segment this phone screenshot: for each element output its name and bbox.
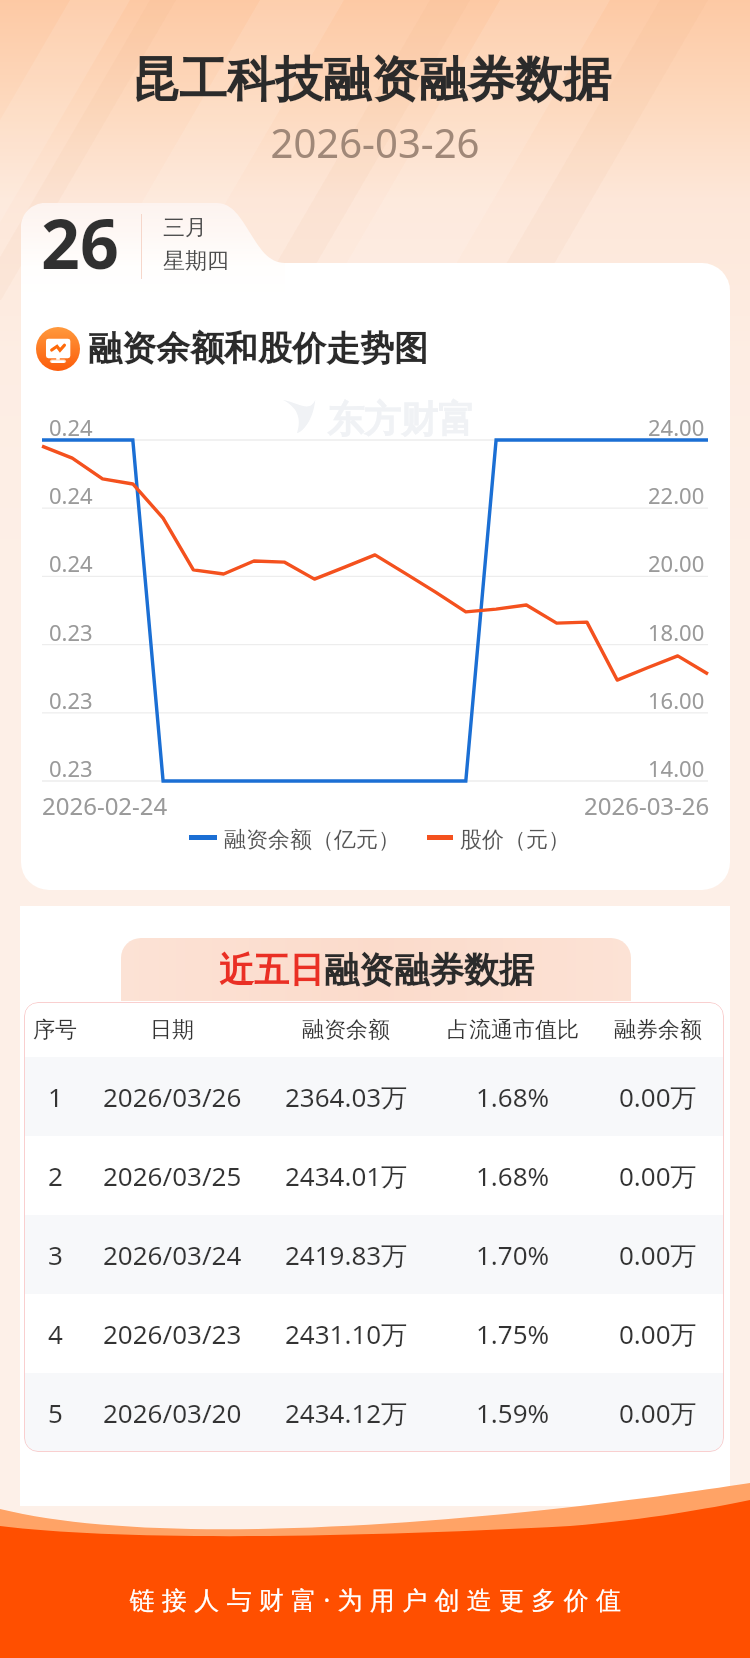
staticText: 2026/03/24 xyxy=(103,1237,242,1272)
staticText: 16.00 xyxy=(648,685,705,715)
staticText: 2434.12万 xyxy=(285,1395,408,1431)
staticText: 20.00 xyxy=(648,548,705,578)
staticText: 1.59% xyxy=(476,1395,550,1430)
staticText: 日期 xyxy=(150,1016,194,1044)
staticText: 融券余额 xyxy=(614,1016,702,1044)
staticText: 2364.03万 xyxy=(285,1079,408,1115)
staticText: 0.23 xyxy=(49,617,93,647)
staticText: 东方财富 xyxy=(327,1223,475,1270)
staticText: 2419.83万 xyxy=(285,1237,408,1273)
staticText: 星期四 xyxy=(163,247,229,275)
staticText: 融资余额 xyxy=(302,1016,390,1044)
staticText: 0.00万 xyxy=(619,1237,697,1273)
staticText: 近五日融资融券数据 xyxy=(219,948,534,992)
staticText: 3 xyxy=(48,1237,63,1272)
staticText: 22.00 xyxy=(648,480,705,510)
staticText: 昆工科技融资融券数据 xyxy=(0,50,746,110)
staticText: 东方财富 xyxy=(327,396,475,443)
staticText: 14.00 xyxy=(648,753,705,783)
staticText: 融资余额（亿元） xyxy=(224,826,400,854)
staticText: 18.00 xyxy=(648,617,705,647)
staticText: 0.24 xyxy=(49,412,93,442)
staticText: 0.24 xyxy=(49,480,93,510)
staticText: 股价（元） xyxy=(460,826,570,854)
staticText: 26 xyxy=(41,196,119,289)
staticText: 2026-02-24 xyxy=(42,789,168,822)
staticText: 2026/03/25 xyxy=(103,1158,242,1193)
staticText: 0.00万 xyxy=(619,1079,697,1115)
staticText: 2026/03/26 xyxy=(103,1079,242,1114)
staticText: 2434.01万 xyxy=(285,1158,408,1194)
staticText: 序号 xyxy=(33,1016,77,1044)
staticText: 2026/03/20 xyxy=(103,1395,242,1430)
staticText: 24.00 xyxy=(648,412,705,442)
staticText: 三月 xyxy=(163,214,207,242)
staticText: 2026-03-26 xyxy=(0,115,750,169)
staticText: 链接人与财富·为用户创造更多价值 xyxy=(4,1582,750,1616)
staticText: 0.23 xyxy=(49,685,93,715)
staticText: 0.00万 xyxy=(619,1316,697,1352)
staticText: 0.00万 xyxy=(619,1158,697,1194)
staticText: 2026-03-26 xyxy=(584,789,710,822)
staticText: 占流通市值比 xyxy=(447,1016,579,1044)
staticText: 2 xyxy=(48,1158,63,1193)
staticText: 0.24 xyxy=(49,548,93,578)
staticText: 融资余额和股价走势图 xyxy=(88,327,428,370)
staticText: 1.75% xyxy=(476,1316,550,1351)
staticText: 2026/03/23 xyxy=(103,1316,242,1351)
staticText: 0.23 xyxy=(49,753,93,783)
staticText: 1.68% xyxy=(476,1158,550,1193)
staticText: 5 xyxy=(48,1395,63,1430)
staticText: 0.00万 xyxy=(619,1395,697,1431)
staticText: 1.68% xyxy=(476,1079,550,1114)
staticText: 2431.10万 xyxy=(285,1316,408,1352)
staticText: 1 xyxy=(48,1079,63,1114)
staticText: 1.70% xyxy=(476,1237,550,1272)
staticText: 4 xyxy=(48,1316,63,1351)
